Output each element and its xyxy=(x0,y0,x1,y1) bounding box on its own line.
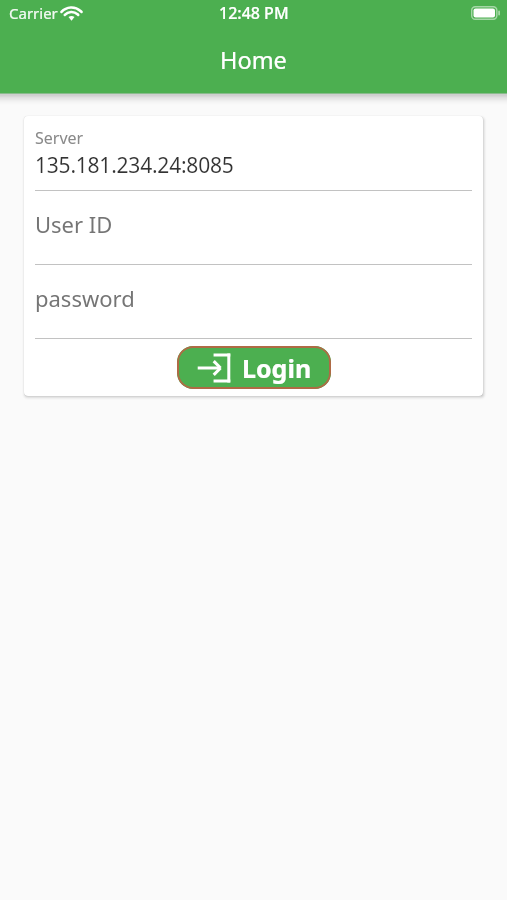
staticText: Home xyxy=(220,44,287,76)
staticText: Carrier xyxy=(9,3,58,23)
staticText: User ID xyxy=(35,209,113,239)
staticText: 135.181.234.24:8085 xyxy=(35,151,234,180)
staticText: 12:48 PM xyxy=(219,2,289,24)
button[interactable]: Login xyxy=(177,346,331,389)
button[interactable]: password xyxy=(35,265,472,339)
staticText: Login xyxy=(242,351,312,385)
button[interactable]: Server xyxy=(35,116,472,191)
staticText: Server xyxy=(35,127,84,149)
button[interactable]: User ID xyxy=(35,191,472,265)
other: Wi-Fi signal xyxy=(61,6,82,21)
staticText: password xyxy=(35,283,135,313)
other: Battery full xyxy=(471,6,500,20)
